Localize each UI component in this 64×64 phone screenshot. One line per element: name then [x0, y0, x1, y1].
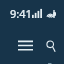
- button[interactable]: Open navigation menu: [8, 28, 42, 62]
- staticText: 9:41: [10, 6, 32, 21]
- button[interactable]: Search: [46, 28, 56, 62]
